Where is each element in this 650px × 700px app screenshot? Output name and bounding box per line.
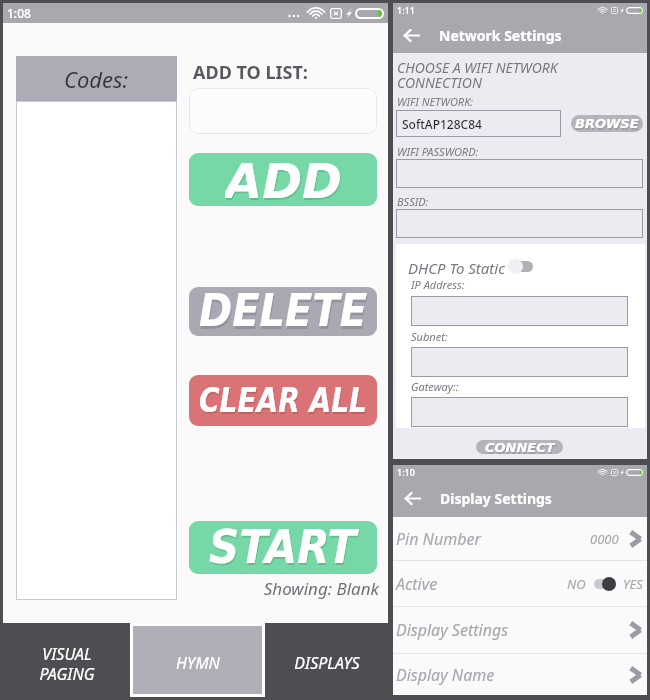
button[interactable]: Back: [393, 479, 431, 517]
button[interactable]: [189, 88, 377, 134]
staticText: Pin Number: [396, 528, 481, 550]
button[interactable]: Display Settings: [393, 607, 647, 653]
button[interactable]: DELETE: [189, 287, 377, 336]
staticText: WIFI PASSWORD:: [397, 144, 479, 159]
staticText: CONNECT: [485, 440, 555, 454]
button[interactable]: Display Name: [393, 654, 647, 695]
button[interactable]: ADD: [189, 153, 377, 206]
button[interactable]: [16, 101, 177, 600]
staticText: 1:08: [7, 5, 31, 21]
staticText: DISPLAYS: [294, 652, 360, 674]
staticText: ADD TO LIST:: [193, 60, 308, 85]
staticText: Display Settings: [440, 489, 552, 508]
button[interactable]: [411, 296, 628, 326]
staticText: WIFI NETWORK:: [397, 94, 474, 109]
staticText: DELETE: [200, 288, 368, 336]
staticText: YES: [623, 575, 643, 593]
button[interactable]: [396, 209, 643, 238]
staticText: Codes:: [64, 64, 129, 94]
staticText: 0000: [590, 530, 619, 548]
staticText: DHCP To Static: [408, 258, 505, 278]
staticText: 1:11: [397, 4, 415, 16]
button[interactable]: SoftAP128C84: [396, 110, 561, 137]
staticText: Display Settings: [396, 619, 509, 641]
button[interactable]: CONNECT: [476, 440, 563, 454]
button[interactable]: [411, 397, 628, 427]
button[interactable]: Active: [393, 561, 647, 606]
button[interactable]: [411, 347, 628, 377]
staticText: BROWSE: [575, 116, 639, 131]
staticText: CHOOSE A WIFI NETWORK CONNECTION: [397, 58, 558, 92]
staticText: Showing: Blank: [191, 577, 379, 600]
staticText: VISUAL PAGING: [39, 643, 95, 684]
button[interactable]: Back: [393, 17, 429, 53]
button[interactable]: DISPLAYS: [265, 623, 388, 697]
button[interactable]: HYMN: [133, 626, 262, 694]
staticText: Gateway::: [411, 379, 459, 394]
staticText: CONNECT: [486, 442, 556, 454]
staticText: NO: [567, 575, 586, 593]
button[interactable]: START: [189, 521, 377, 574]
staticText: ADD: [226, 155, 343, 206]
staticText: Network Settings: [439, 26, 562, 45]
staticText: Active: [396, 573, 438, 595]
button[interactable]: VISUAL PAGING: [3, 623, 130, 697]
staticText: BSSID:: [397, 194, 429, 209]
button[interactable]: BROWSE: [571, 115, 643, 132]
button[interactable]: Pin Number: [393, 517, 647, 560]
button[interactable]: [396, 159, 643, 188]
staticText: ADD: [225, 153, 342, 206]
button[interactable]: [593, 577, 616, 591]
button[interactable]: [508, 259, 534, 274]
staticText: HYMN: [176, 652, 220, 674]
staticText: START: [209, 521, 357, 574]
staticText: Subnet:: [411, 329, 448, 344]
staticText: SoftAP128C84: [402, 116, 482, 132]
staticText: START: [210, 523, 358, 574]
staticText: IP Address:: [411, 277, 465, 292]
staticText: 1:10: [397, 466, 415, 478]
staticText: BROWSE: [576, 118, 640, 132]
staticText: CLEAR ALL: [200, 383, 368, 422]
staticText: DELETE: [199, 287, 367, 336]
button[interactable]: CLEAR ALL: [189, 375, 377, 426]
staticText: Display Name: [396, 664, 495, 686]
staticText: CLEAR ALL: [199, 381, 367, 420]
